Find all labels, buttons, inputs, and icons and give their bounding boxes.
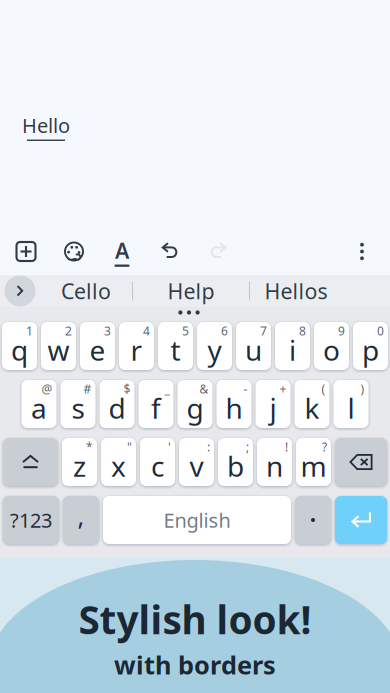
button[interactable]: : [179, 438, 214, 486]
staticText: 1 [26, 323, 33, 339]
button[interactable]: Cello [40, 275, 132, 307]
staticText: * [86, 439, 93, 455]
staticText: _ [164, 381, 169, 397]
button[interactable]: Expand toolbar [0, 275, 40, 307]
staticText: # [83, 381, 91, 397]
staticText: l [347, 389, 354, 427]
staticText: : [207, 439, 210, 455]
button[interactable]: 4 [119, 322, 154, 370]
staticText: e [89, 331, 105, 369]
staticText: h [225, 389, 242, 427]
staticText: k [304, 389, 319, 427]
staticText: s [71, 389, 84, 427]
button[interactable]: Backspace [335, 438, 387, 486]
staticText: 5 [182, 323, 189, 339]
button[interactable]: ' [140, 438, 175, 486]
button[interactable]: + [255, 380, 290, 428]
staticText: a [31, 389, 47, 427]
staticText: 3 [104, 323, 111, 339]
staticText: 9 [338, 323, 345, 339]
button[interactable]: ) [333, 380, 368, 428]
button[interactable]: 0 [353, 322, 388, 370]
staticText: z [73, 447, 86, 485]
button[interactable]: 3 [80, 322, 115, 370]
button[interactable]: Insert [2, 229, 50, 273]
staticText: d [108, 389, 125, 427]
button[interactable]: Hellos [250, 275, 342, 307]
button[interactable]: 6 [197, 322, 232, 370]
button[interactable]: 5 [158, 322, 193, 370]
button[interactable]: Enter [335, 496, 387, 544]
button[interactable]: 1 [2, 322, 37, 370]
button[interactable]: Colour [50, 229, 98, 273]
button[interactable]: & [177, 380, 212, 428]
staticText: r [130, 331, 142, 369]
staticText: p [362, 331, 379, 369]
button[interactable]: Redo [194, 229, 242, 273]
staticText: y [207, 331, 221, 369]
button[interactable]: Symbols [3, 496, 59, 544]
button[interactable]: ! [257, 438, 292, 486]
button[interactable]: ( [294, 380, 329, 428]
staticText: " [127, 439, 132, 455]
button[interactable]: More options [340, 229, 384, 273]
staticText: n [266, 447, 283, 485]
staticText: Hellos [264, 277, 327, 305]
button[interactable]: Undo [146, 229, 194, 273]
staticText: + [279, 381, 286, 397]
button[interactable]: Shift [3, 438, 58, 486]
staticText: 7 [260, 323, 267, 339]
staticText: q [11, 331, 28, 369]
button[interactable]: $ [99, 380, 134, 428]
button[interactable]: _ [138, 380, 173, 428]
button[interactable]: # [60, 380, 95, 428]
button[interactable]: Text style [98, 229, 146, 273]
staticText: ? [322, 439, 327, 455]
staticText: 2 [65, 323, 72, 339]
staticText: c [151, 447, 164, 485]
staticText: w [47, 331, 69, 369]
button[interactable]: Period [295, 496, 331, 544]
staticText: Stylish look! [78, 593, 311, 645]
staticText: @ [41, 381, 52, 397]
staticText: ( [321, 381, 325, 397]
staticText: Help [167, 277, 214, 305]
button[interactable]: ? [296, 438, 331, 486]
button[interactable]: - [216, 380, 251, 428]
button[interactable]: " [101, 438, 136, 486]
staticText: v [189, 447, 203, 485]
staticText: 0 [377, 323, 384, 339]
button[interactable]: @ [21, 380, 56, 428]
button[interactable]: 7 [236, 322, 271, 370]
button[interactable]: 8 [275, 322, 310, 370]
staticText: o [323, 331, 340, 369]
staticText: $ [123, 381, 130, 397]
button[interactable]: English [103, 496, 291, 544]
staticText: ! [285, 439, 288, 455]
staticText: 4 [143, 323, 150, 339]
staticText: 8 [299, 323, 306, 339]
staticText: - [243, 381, 247, 397]
staticText: & [199, 381, 208, 397]
staticText: b [227, 447, 244, 485]
staticText: t [170, 331, 180, 369]
staticText: u [245, 331, 262, 369]
button[interactable]: Comma [63, 496, 99, 544]
staticText: , [77, 499, 84, 533]
staticText: g [186, 389, 203, 427]
button[interactable]: * [62, 438, 97, 486]
staticText: Hello [22, 112, 70, 139]
button[interactable]: Help [133, 275, 249, 307]
staticText: ; [246, 439, 249, 455]
staticText: j [269, 389, 276, 427]
button[interactable]: 9 [314, 322, 349, 370]
staticText: f [151, 389, 161, 427]
button[interactable]: 2 [41, 322, 76, 370]
staticText: ?123 [10, 507, 52, 533]
staticText: with borders [114, 648, 276, 681]
staticText: A [115, 236, 129, 264]
staticText: ) [360, 381, 364, 397]
staticText: i [289, 331, 296, 369]
button[interactable]: ; [218, 438, 253, 486]
staticText: English [163, 507, 230, 533]
